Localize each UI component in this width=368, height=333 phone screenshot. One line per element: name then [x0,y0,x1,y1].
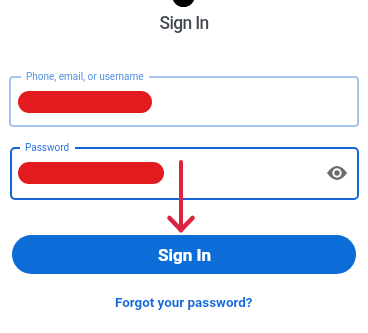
staticText: Phone, email, or username [26,71,144,83]
button[interactable] [9,76,359,127]
staticText: Sign In [158,245,211,265]
staticText: Password [25,142,70,154]
button[interactable]: Forgot your password? [111,291,257,315]
staticText: Forgot your password? [115,295,253,311]
button[interactable] [10,147,359,200]
staticText: Sign In [0,13,368,43]
button[interactable]: Sign In [12,235,356,274]
button[interactable] [325,161,349,185]
